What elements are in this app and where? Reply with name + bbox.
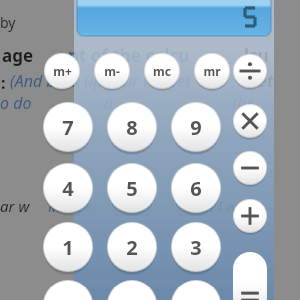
button[interactable]: Divide [233, 54, 267, 88]
button[interactable]: Multiply [233, 104, 267, 138]
staticText: (And back up your widget [10, 70, 191, 92]
staticText: a [104, 92, 114, 114]
staticText: 4 [62, 175, 74, 202]
button[interactable]: Minus [233, 151, 267, 185]
button[interactable]: 9 [171, 102, 221, 152]
staticText: 2 [126, 234, 138, 261]
button[interactable]: 2 [107, 222, 157, 272]
button[interactable]: Zero [43, 280, 93, 300]
button[interactable]: 3 [171, 222, 221, 272]
staticText: m- [104, 63, 120, 79]
staticText: mr [203, 63, 221, 79]
button[interactable]: 6 [171, 163, 221, 213]
button[interactable]: Equals [233, 252, 267, 300]
button[interactable]: 8 [107, 102, 157, 152]
staticText: mc [153, 63, 171, 79]
staticText: 1 [62, 234, 74, 261]
button[interactable]: m- [94, 53, 130, 89]
button[interactable]: Plus [233, 199, 267, 233]
button[interactable]: mr [194, 53, 230, 89]
staticText: 5 [126, 175, 138, 202]
button[interactable]: 7 [43, 102, 93, 152]
staticText: 9 [190, 114, 202, 141]
staticText: lcu [244, 44, 269, 67]
button[interactable]: m+ [44, 53, 80, 89]
staticText: the [232, 92, 255, 114]
staticText: Mabye [48, 196, 93, 216]
staticText: 8 [126, 114, 138, 141]
staticText: 7 [62, 114, 74, 141]
button[interactable]: 1 [43, 222, 93, 272]
staticText: o do [0, 92, 32, 114]
staticText: by [0, 13, 16, 32]
button[interactable]: Decimal point [107, 280, 157, 300]
button[interactable]: 4 [43, 163, 93, 213]
staticText: 6 [190, 175, 202, 202]
button[interactable]: mc [144, 53, 180, 89]
staticText: m+ [53, 63, 72, 79]
staticText: ar w [0, 196, 30, 216]
staticText: et [258, 70, 274, 92]
staticText: ut I wou [200, 196, 255, 216]
staticText: nt of the calcu [68, 44, 190, 67]
staticText: age [2, 44, 34, 67]
button[interactable]: 5 [107, 163, 157, 213]
staticText: : [1, 72, 6, 94]
staticText: 3 [190, 234, 202, 261]
button[interactable] [77, 0, 271, 36]
button[interactable]: Clear [171, 280, 221, 300]
